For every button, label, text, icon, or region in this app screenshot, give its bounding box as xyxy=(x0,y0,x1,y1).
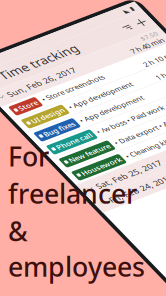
staticText: Time tracking xyxy=(0,90,92,112)
staticText: New feature xyxy=(0,235,31,248)
staticText: Sun, Feb 26, 2017 xyxy=(0,121,69,135)
staticText: 2 h 10 min xyxy=(140,150,166,162)
staticText: $7.50 xyxy=(162,116,166,127)
staticText: • Data export • App development xyxy=(38,235,130,248)
staticText: • App development xyxy=(27,167,111,180)
staticText: • Cleaning kitchen • Housework xyxy=(36,258,145,270)
staticText: 45 min xyxy=(155,263,166,275)
staticText: $12.00 xyxy=(157,276,166,287)
staticText: • Store screenshots xyxy=(8,145,90,157)
staticText: Housework xyxy=(0,258,29,270)
staticText: Bug fixes xyxy=(0,190,18,202)
staticText: • App development xyxy=(25,190,109,202)
staticText: • /w boss • Paid work xyxy=(31,213,120,225)
staticText: freelancer xyxy=(8,176,137,211)
staticText: Sat, Feb 25, 2017 xyxy=(0,280,65,295)
staticText: 2 h 05 min xyxy=(140,240,166,253)
staticText: 1 h 05 min xyxy=(140,173,166,185)
staticText: 7 h 40 min xyxy=(140,127,166,139)
staticText: For xyxy=(8,138,49,174)
staticText: Phone call xyxy=(0,213,24,225)
staticText: & employees xyxy=(8,213,145,284)
